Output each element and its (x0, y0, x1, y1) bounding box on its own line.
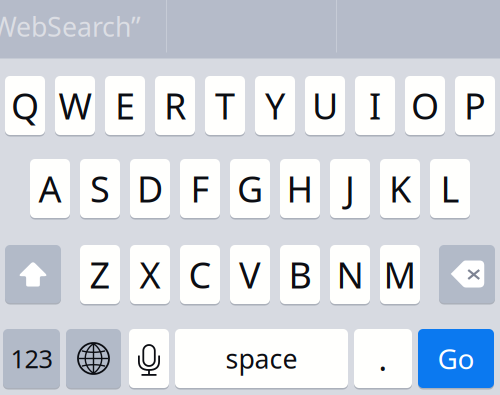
staticText: 123 (10, 342, 52, 375)
button[interactable]: Shift (0, 0, 56, 58)
staticText: Z (89, 251, 110, 298)
button[interactable]: Next keyboard (0, 0, 55, 59)
staticText: E (115, 82, 135, 129)
button[interactable]: W (0, 0, 40, 59)
button[interactable]: D (0, 0, 40, 59)
button[interactable]: Go (0, 0, 76, 59)
staticText: X (139, 251, 160, 298)
button[interactable]: Dictation (0, 0, 40, 59)
button[interactable]: Delete (0, 0, 56, 58)
staticText: C (188, 251, 211, 298)
staticText: D (137, 165, 163, 212)
staticText: T (215, 82, 235, 129)
staticText: . (378, 337, 387, 380)
staticText: S (90, 165, 110, 212)
staticText: R (164, 82, 186, 129)
staticText: B (288, 251, 311, 298)
staticText: J (345, 165, 355, 212)
button[interactable]: P (0, 0, 40, 59)
button[interactable]: K (0, 0, 40, 59)
button[interactable]: H (0, 0, 40, 59)
button[interactable]: J (0, 0, 40, 59)
button[interactable]: F (0, 0, 40, 59)
staticText: Q (11, 82, 39, 129)
staticText: space (225, 341, 297, 376)
staticText: G (237, 165, 263, 212)
staticText: A (38, 165, 61, 212)
button[interactable]: Z (0, 0, 40, 59)
staticText: M (383, 251, 416, 298)
staticText: I (369, 82, 381, 129)
button[interactable]: Y (0, 0, 40, 59)
staticText: L (440, 165, 459, 212)
button[interactable]: X (0, 0, 40, 59)
button[interactable]: R (0, 0, 40, 59)
staticText: K (389, 165, 411, 212)
button[interactable]: S (0, 0, 40, 59)
button[interactable]: space (0, 0, 173, 59)
staticText: “WebSearch” (0, 9, 141, 44)
staticText: V (239, 251, 261, 298)
staticText: Go (437, 340, 474, 377)
staticText: N (336, 251, 363, 298)
button[interactable]: T (0, 0, 40, 59)
button[interactable]: . (0, 0, 58, 59)
staticText: O (411, 82, 439, 129)
button[interactable]: M (0, 0, 40, 59)
staticText: H (286, 165, 313, 212)
button[interactable]: I (0, 0, 40, 59)
button[interactable]: E (0, 0, 40, 59)
button[interactable]: “WebSearch” (0, 0, 144, 55)
button[interactable]: V (0, 0, 40, 59)
button[interactable]: Q (0, 0, 40, 59)
button[interactable]: B (0, 0, 40, 59)
staticText: P (464, 82, 486, 129)
staticText: W (58, 82, 91, 129)
staticText: Y (265, 82, 285, 129)
button[interactable]: A (0, 0, 40, 59)
staticText: F (190, 165, 209, 212)
button[interactable]: N (0, 0, 40, 59)
button[interactable]: U (0, 0, 40, 59)
button[interactable]: C (0, 0, 40, 59)
button[interactable]: O (0, 0, 40, 59)
staticText: U (312, 82, 338, 129)
button[interactable]: G (0, 0, 40, 59)
button[interactable]: 123 (0, 0, 57, 59)
button[interactable]: L (0, 0, 40, 59)
